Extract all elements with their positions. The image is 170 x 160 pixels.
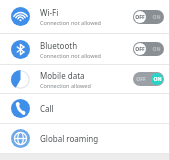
staticText: Call: [40, 103, 54, 114]
staticText: Connection not allowed: [40, 19, 101, 26]
button[interactable]: Toggle off: [133, 10, 164, 24]
staticText: Global roaming: [40, 133, 99, 144]
button[interactable]: Wi-Fi: [0, 0, 170, 33]
staticText: Connection allowed: [40, 82, 91, 89]
staticText: Wi-Fi: [40, 7, 59, 18]
staticText: ON: [152, 46, 161, 53]
staticText: OFF: [135, 14, 145, 21]
staticText: ON: [152, 76, 161, 83]
button[interactable]: Toggle off: [133, 42, 164, 56]
button[interactable]: Call: [0, 94, 170, 123]
staticText: OFF: [135, 46, 145, 53]
staticText: Connection not allowed: [40, 52, 101, 59]
button[interactable]: Toggle on: [133, 72, 164, 86]
staticText: OFF: [136, 46, 146, 53]
staticText: Bluetooth: [40, 40, 78, 51]
staticText: OFF: [136, 76, 146, 83]
staticText: Mobile data: [40, 70, 85, 81]
button[interactable]: Global roaming: [0, 124, 170, 153]
staticText: OFF: [136, 14, 146, 21]
staticText: ON: [152, 14, 161, 21]
staticText: ON: [153, 76, 162, 83]
button[interactable]: Bluetooth: [0, 34, 170, 64]
button[interactable]: Mobile data: [0, 65, 170, 93]
